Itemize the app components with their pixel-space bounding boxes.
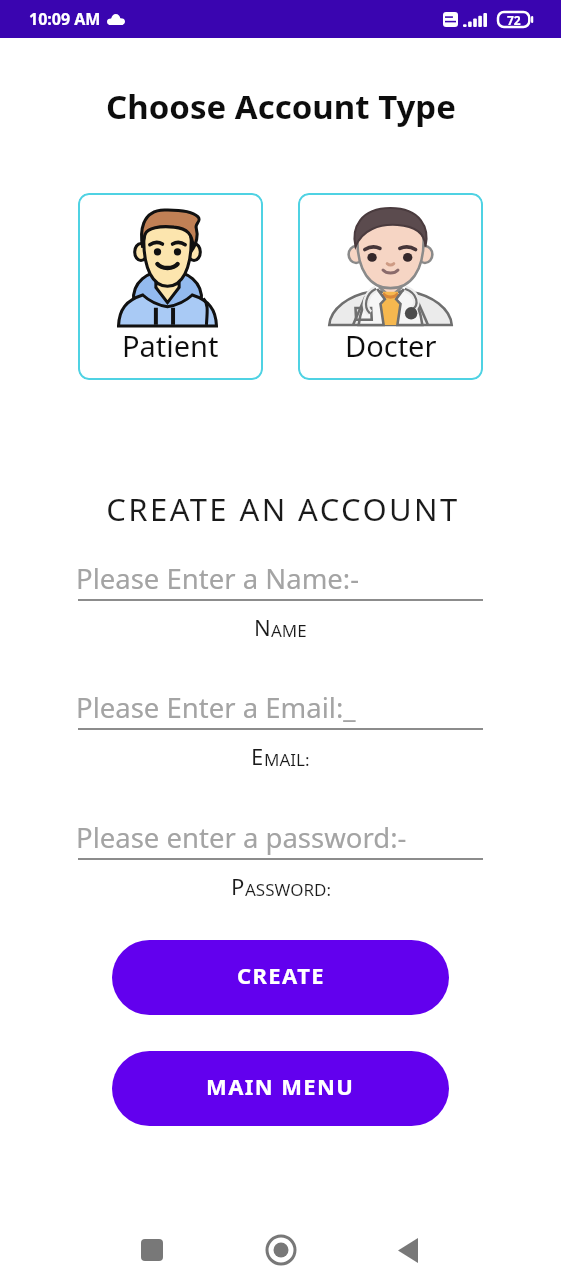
button[interactable]: MAIN MENU bbox=[112, 1051, 449, 1126]
staticText: MAIN MENU bbox=[206, 1071, 355, 1101]
staticText: N bbox=[254, 612, 271, 642]
staticText: ASSWORD: bbox=[245, 878, 331, 901]
staticText: CREATE bbox=[237, 960, 325, 990]
button[interactable]: Please enter a password:- bbox=[78, 819, 483, 860]
button[interactable]: Back bbox=[378, 1220, 438, 1280]
staticText: Please Enter a Name:- bbox=[76, 560, 360, 597]
staticText: Choose Account Type bbox=[106, 84, 456, 129]
staticText: P bbox=[231, 871, 245, 901]
button[interactable]: Home bbox=[251, 1220, 311, 1280]
staticText: MAIL: bbox=[264, 748, 310, 771]
staticText: Please enter a password:- bbox=[76, 819, 407, 856]
staticText: CREATE AN ACCOUNT bbox=[106, 488, 460, 530]
staticText: 72 bbox=[507, 12, 521, 28]
staticText: Docter bbox=[345, 326, 437, 362]
staticText: Please Enter a Email:_ bbox=[76, 689, 356, 726]
button[interactable]: Patient bbox=[78, 193, 263, 380]
staticText: 10:09 AM bbox=[29, 8, 101, 30]
staticText: E bbox=[251, 741, 264, 771]
button[interactable]: CREATE bbox=[112, 940, 449, 1015]
button[interactable]: Please Enter a Name:- bbox=[78, 560, 483, 601]
button[interactable]: Docter bbox=[298, 193, 483, 380]
button[interactable]: Recents bbox=[122, 1220, 182, 1280]
button[interactable]: Please Enter a Email:_ bbox=[78, 689, 483, 730]
staticText: AME bbox=[271, 619, 307, 642]
staticText: Patient bbox=[122, 326, 219, 362]
